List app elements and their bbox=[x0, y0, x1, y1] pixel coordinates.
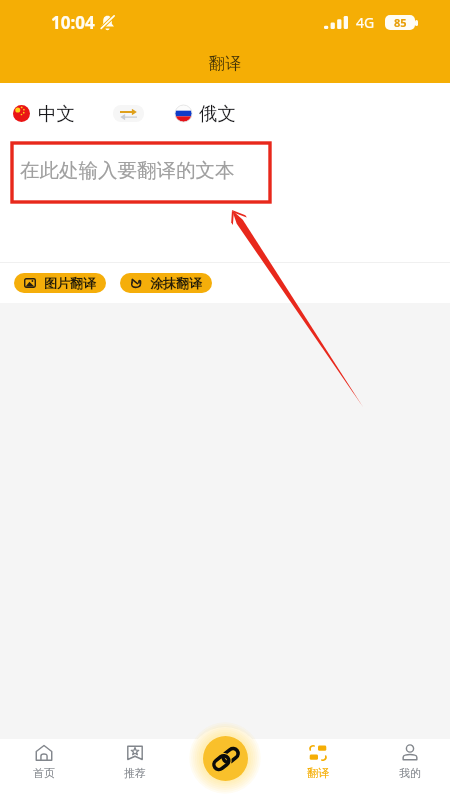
staticText: 图片翻译 bbox=[44, 275, 96, 291]
staticText: 推荐 bbox=[124, 766, 146, 780]
button[interactable]: 图片翻译 bbox=[14, 273, 106, 293]
staticText: 我的 bbox=[399, 766, 421, 780]
staticText: 4G bbox=[356, 13, 375, 32]
staticText: 翻译 bbox=[209, 54, 241, 74]
staticText: 在此处输入要翻译的文本 bbox=[20, 158, 235, 183]
staticText: 翻译 bbox=[307, 766, 329, 780]
staticText: 中文 bbox=[38, 102, 75, 125]
button[interactable]: 我的 bbox=[365, 739, 450, 800]
button[interactable]: 在此处输入要翻译的文本 bbox=[0, 136, 450, 262]
button[interactable]: 中文 bbox=[13, 102, 75, 125]
button[interactable]: Swap languages bbox=[113, 105, 144, 122]
button[interactable]: Link translate bbox=[203, 736, 248, 781]
button[interactable]: 涂抹翻译 bbox=[120, 273, 212, 293]
button[interactable]: 翻译 bbox=[273, 739, 363, 800]
staticText: 85 bbox=[394, 15, 407, 30]
staticText: 首页 bbox=[33, 766, 55, 780]
button[interactable]: 推荐 bbox=[90, 739, 180, 800]
button[interactable]: 俄文 bbox=[175, 102, 236, 125]
staticText: 10:04 bbox=[51, 11, 95, 34]
staticText: 俄文 bbox=[199, 102, 236, 125]
staticText: 涂抹翻译 bbox=[150, 275, 202, 291]
button[interactable]: 首页 bbox=[0, 739, 89, 800]
